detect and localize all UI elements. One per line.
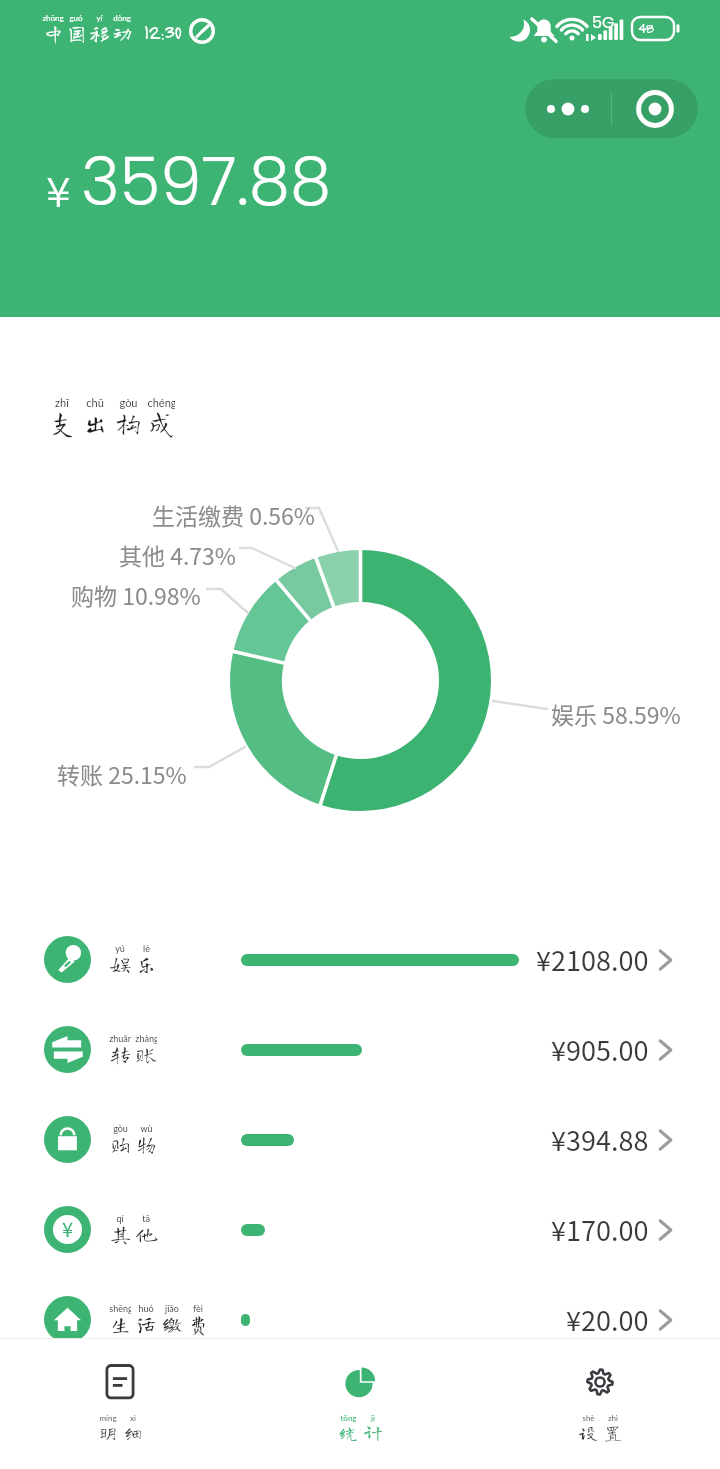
staticText: yú	[115, 943, 125, 954]
button[interactable]: zhuǎn	[0, 1005, 720, 1095]
staticText: 12:30	[144, 19, 181, 44]
staticText: ¥905.00	[551, 1030, 649, 1069]
staticText: 5G	[592, 11, 615, 33]
staticText: 乐	[136, 954, 157, 975]
staticText: 购物 10.98%	[71, 578, 201, 611]
staticText: 其	[110, 1224, 131, 1245]
staticText: 出	[82, 409, 109, 436]
staticText: jiǎo	[165, 1303, 179, 1314]
staticText: fèi	[193, 1303, 203, 1314]
staticText: 设	[578, 1423, 598, 1442]
staticText: ¥	[46, 163, 71, 222]
button[interactable]: gòu	[0, 1095, 720, 1185]
staticText: 娱	[110, 954, 131, 975]
staticText: shè	[582, 1413, 595, 1423]
staticText: qí	[116, 1213, 124, 1224]
staticText: 娱乐 58.59%	[551, 697, 681, 730]
staticText: 构	[115, 409, 142, 436]
staticText: gòu	[113, 1123, 128, 1134]
staticText: 3597.88	[81, 136, 332, 228]
staticText: gòu	[119, 396, 138, 409]
staticText: zhì	[608, 1413, 618, 1423]
button[interactable]: tǒng	[240, 1339, 480, 1449]
staticText: ¥394.88	[551, 1120, 649, 1159]
staticText: 动	[112, 23, 133, 44]
staticText: ¥20.00	[566, 1300, 649, 1339]
staticText: 生	[110, 1314, 131, 1335]
staticText: ¥170.00	[551, 1210, 649, 1249]
staticText: zhuǎn	[109, 1033, 131, 1044]
staticText: zhōng	[42, 13, 64, 23]
staticText: 生活缴费 0.56%	[152, 498, 316, 531]
staticText: shēng	[109, 1303, 131, 1314]
staticText: 细	[123, 1423, 143, 1442]
button[interactable]: Close mini program	[612, 90, 698, 128]
staticText: 置	[603, 1423, 623, 1442]
staticText: wù	[140, 1123, 153, 1134]
staticText: 转账 25.15%	[57, 757, 187, 790]
staticText: guó	[69, 13, 83, 23]
button[interactable]: shè	[480, 1339, 720, 1449]
staticText: lè	[143, 943, 150, 954]
staticText: 他	[136, 1224, 157, 1245]
staticText: tǒng	[340, 1413, 357, 1423]
staticText: jì	[371, 1413, 375, 1423]
staticText: chū	[86, 396, 104, 409]
staticText: 移	[89, 23, 110, 44]
staticText: xì	[130, 1413, 136, 1423]
staticText: 支	[49, 409, 76, 436]
staticText: tā	[142, 1213, 150, 1224]
button[interactable]: ¥	[0, 1185, 720, 1275]
staticText: 转	[110, 1044, 131, 1065]
staticText: huó	[138, 1303, 154, 1314]
staticText: zhī	[55, 396, 69, 409]
staticText: 统	[338, 1423, 358, 1442]
staticText: 费	[188, 1314, 209, 1335]
staticText: yí	[96, 13, 103, 23]
staticText: chéng	[147, 396, 175, 409]
staticText: míng	[99, 1413, 117, 1423]
staticText: 缴	[162, 1314, 183, 1335]
staticText: 物	[136, 1134, 157, 1155]
staticText: 48	[638, 18, 654, 36]
staticText: ¥2108.00	[536, 940, 649, 979]
staticText: 其他 4.73%	[119, 538, 237, 571]
staticText: ¥	[62, 1214, 74, 1243]
button[interactable]: míng	[0, 1339, 240, 1449]
staticText: 计	[363, 1423, 383, 1442]
staticText: 成	[148, 409, 175, 436]
staticText: 购	[110, 1134, 131, 1155]
staticText: zhàng	[135, 1033, 157, 1044]
staticText: 账	[136, 1044, 157, 1065]
staticText: 国	[66, 23, 87, 44]
staticText: dòng	[113, 13, 131, 23]
staticText: 活	[136, 1314, 157, 1335]
button[interactable]: More options	[525, 99, 611, 119]
button[interactable]: shēng	[0, 1275, 720, 1365]
button[interactable]: yú	[0, 915, 720, 1005]
staticText: 中	[43, 23, 64, 44]
staticText: 明	[98, 1423, 118, 1442]
